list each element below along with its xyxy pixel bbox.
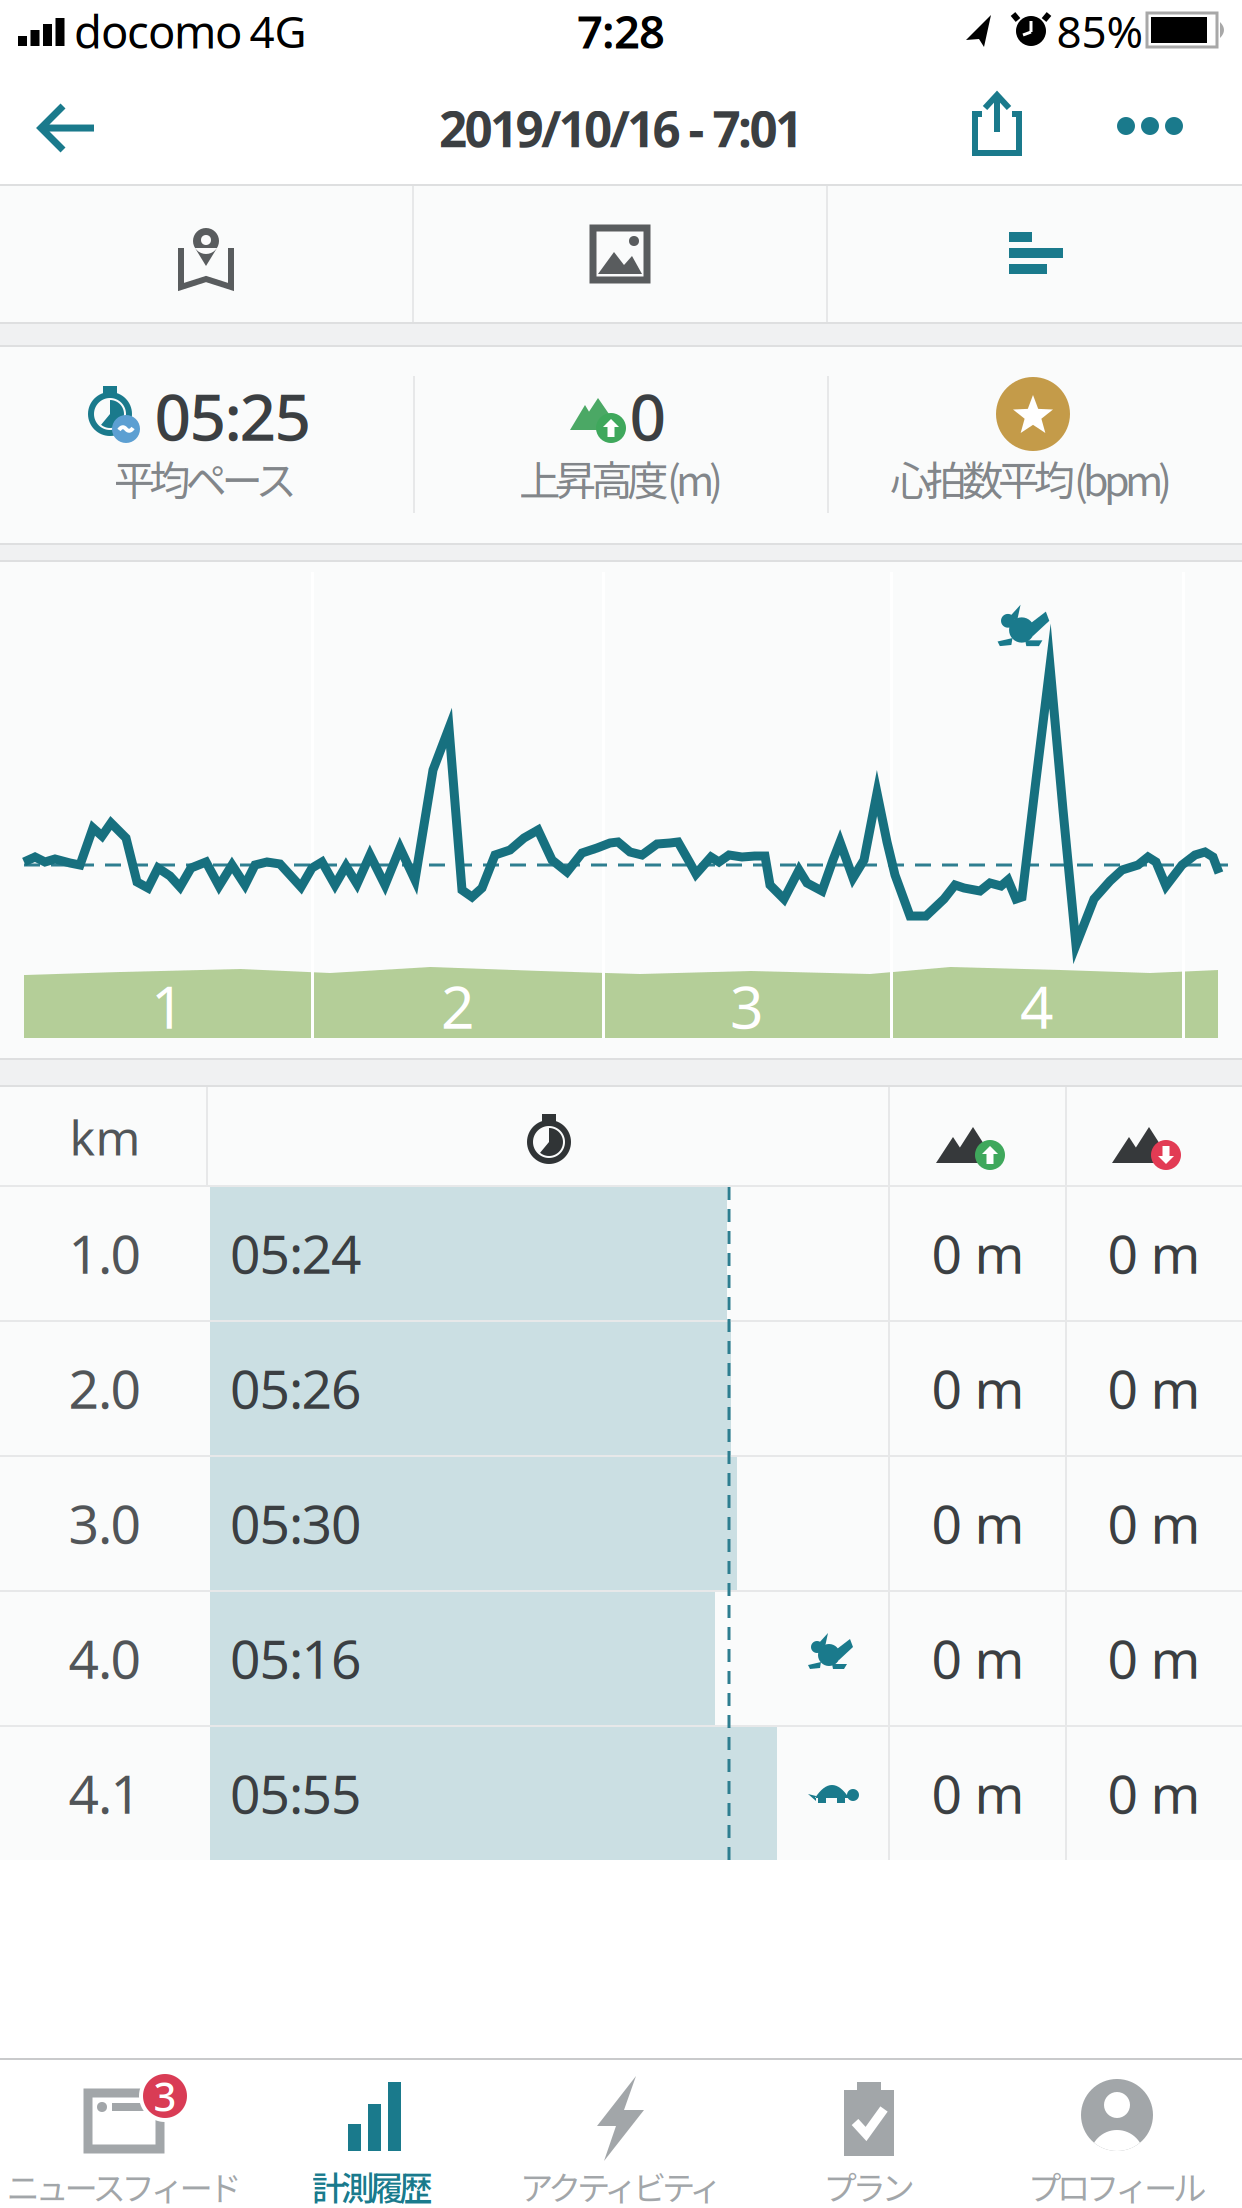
- staticText: 0 m: [931, 1623, 1024, 1693]
- staticText: 85%: [1056, 2, 1143, 60]
- button[interactable]: アクティビティ: [497, 2060, 745, 2208]
- button[interactable]: Map: [0, 186, 412, 322]
- staticText: 0 m: [1107, 1488, 1200, 1558]
- staticText: docomo: [74, 1, 242, 61]
- staticText: 0 m: [931, 1353, 1024, 1423]
- staticText: アクティビティ: [520, 2162, 722, 2208]
- button[interactable]: プラン: [745, 2060, 993, 2208]
- button[interactable]: Back: [16, 78, 116, 178]
- staticText: 2: [441, 967, 475, 1045]
- staticText: 0 m: [1107, 1623, 1200, 1693]
- staticText: 計測履歴: [312, 2162, 432, 2208]
- staticText: 05:30: [230, 1488, 362, 1558]
- button[interactable]: More: [1098, 96, 1202, 156]
- staticText: 0 m: [931, 1758, 1024, 1828]
- staticText: 4.1: [68, 1758, 141, 1828]
- staticText: 0 m: [931, 1488, 1024, 1558]
- button[interactable]: 3: [0, 2060, 248, 2208]
- staticText: 2019/10/16 - 7:01: [439, 95, 803, 161]
- staticText: 7:28: [577, 1, 665, 61]
- staticText: 1: [151, 967, 185, 1045]
- staticText: 3: [730, 967, 764, 1045]
- staticText: 2.0: [68, 1353, 141, 1423]
- staticText: 0 m: [1107, 1353, 1200, 1423]
- staticText: 上昇高度 (m): [519, 448, 723, 508]
- staticText: 05:24: [230, 1218, 362, 1288]
- staticText: 1.0: [68, 1218, 141, 1288]
- staticText: 0: [629, 373, 666, 458]
- staticText: 4: [1020, 967, 1054, 1045]
- staticText: 3: [153, 2069, 176, 2122]
- staticText: 0 m: [1107, 1758, 1200, 1828]
- staticText: 0 m: [1107, 1218, 1200, 1288]
- staticText: 4G: [249, 2, 306, 60]
- button[interactable]: プロフィール: [993, 2060, 1241, 2208]
- button[interactable]: 計測履歴: [248, 2060, 496, 2208]
- staticText: プラン: [823, 2162, 914, 2208]
- staticText: プロフィール: [1028, 2162, 1206, 2208]
- staticText: km: [69, 1105, 140, 1169]
- button[interactable]: Share: [951, 74, 1043, 178]
- staticText: 3.0: [68, 1488, 141, 1558]
- staticText: 05:26: [230, 1353, 362, 1423]
- staticText: 05:55: [230, 1758, 362, 1828]
- staticText: 心拍数平均 (bpm): [890, 448, 1172, 508]
- staticText: ニュースフィード: [6, 2162, 241, 2208]
- staticText: 05:25: [154, 373, 311, 458]
- staticText: 4.0: [68, 1623, 141, 1693]
- button[interactable]: Splits: [829, 186, 1241, 322]
- staticText: 平均ペース: [113, 448, 296, 508]
- staticText: 0 m: [931, 1218, 1024, 1288]
- button[interactable]: Photos: [414, 186, 826, 322]
- staticText: 05:16: [230, 1623, 362, 1693]
